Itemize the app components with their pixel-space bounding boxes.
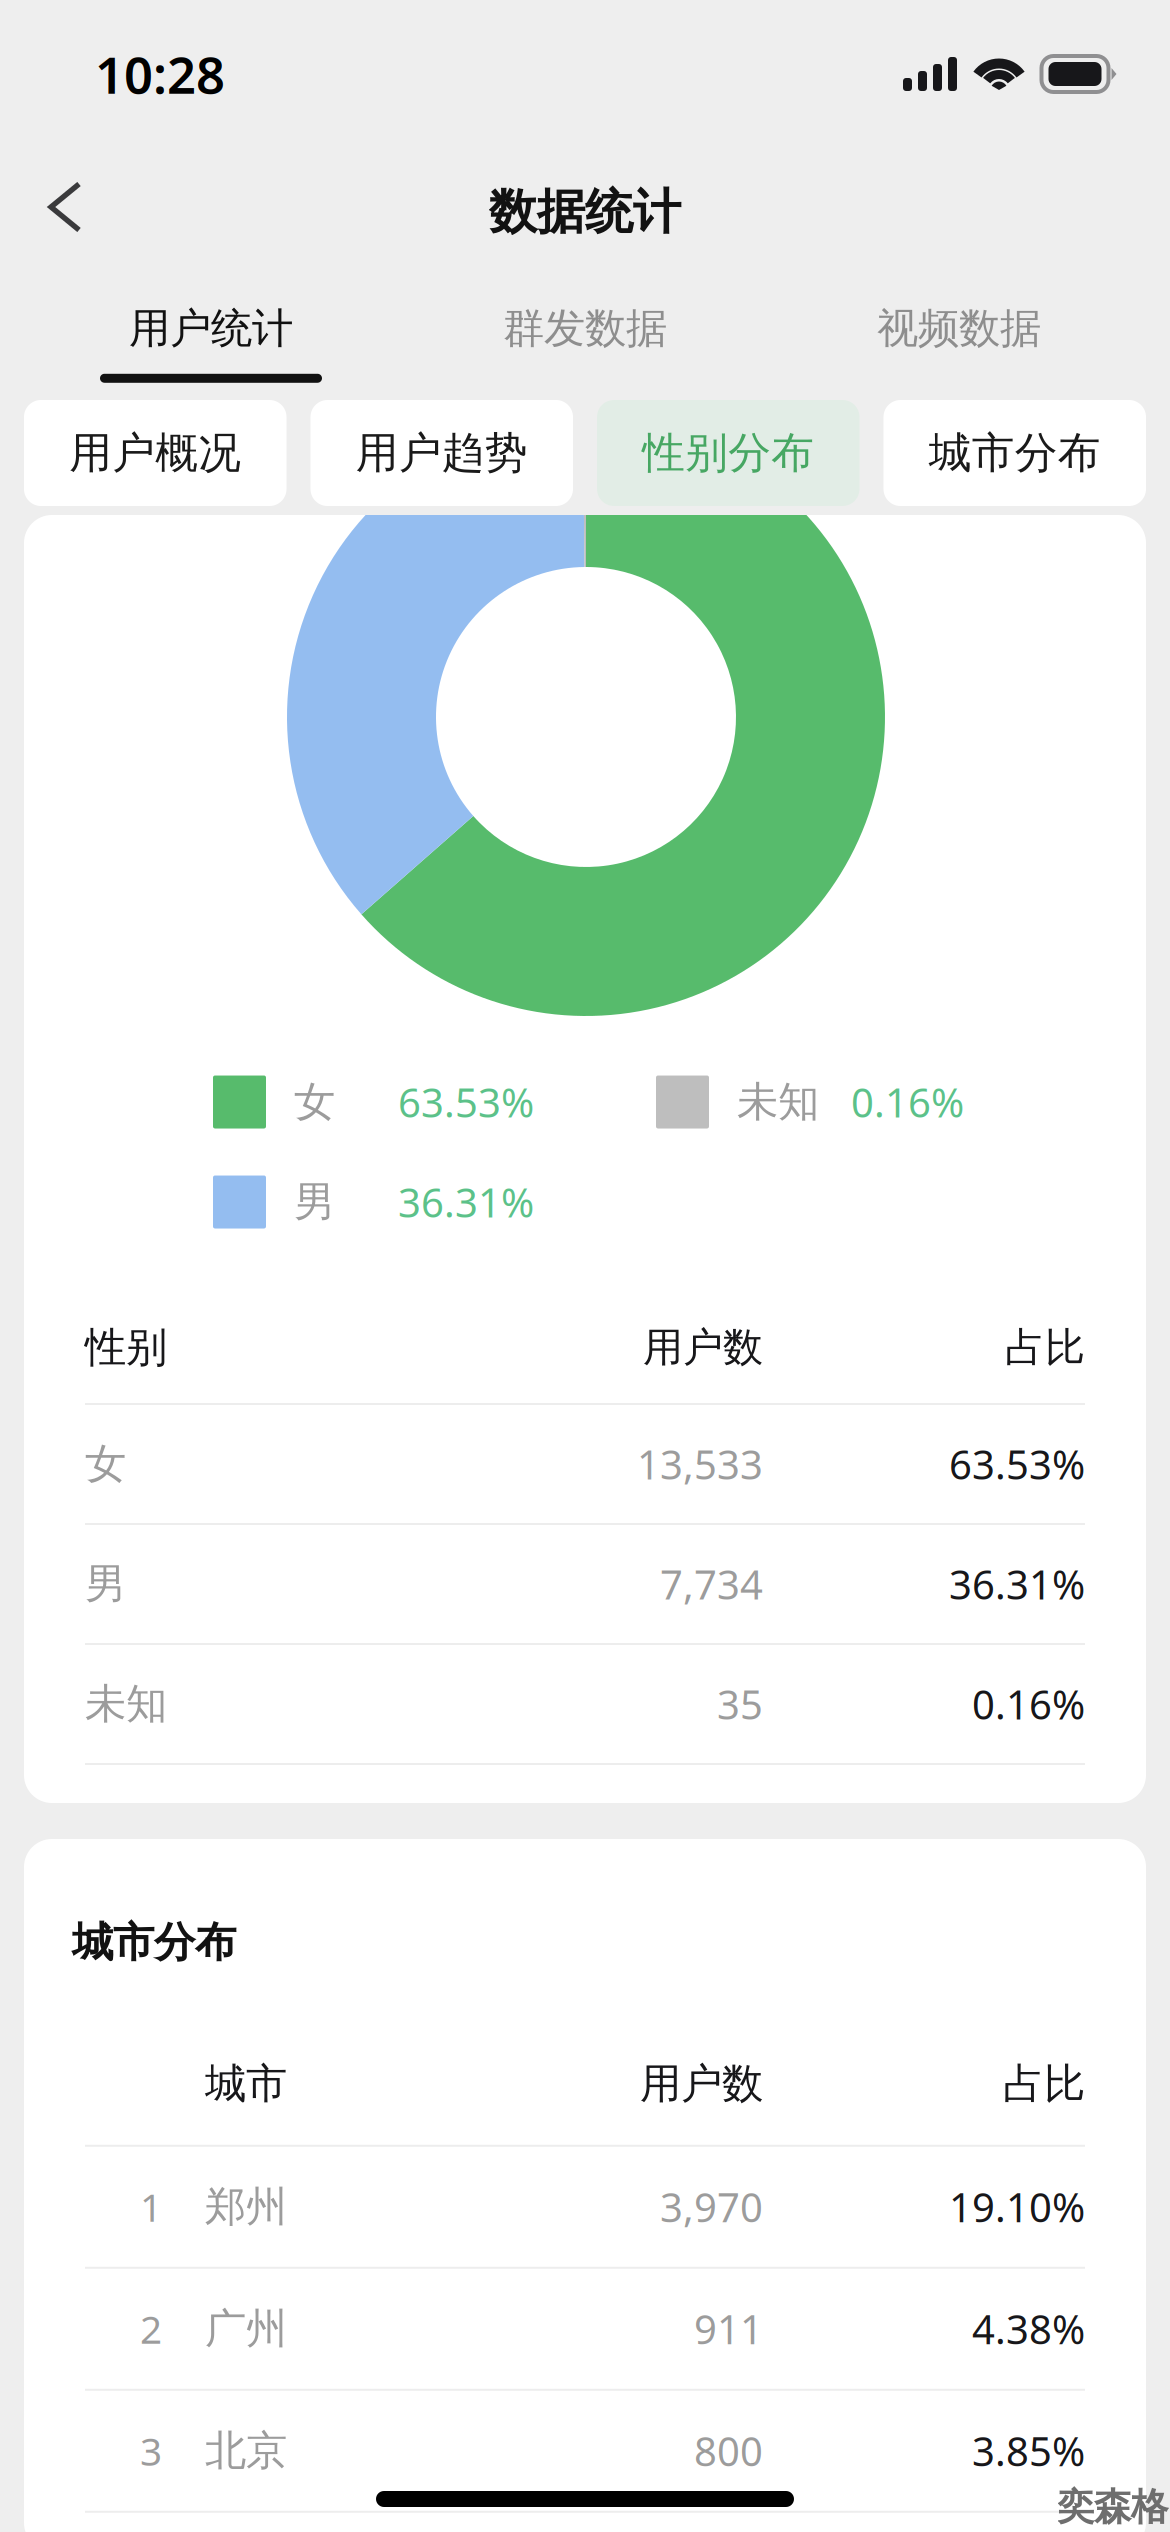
staticText: 0.16%: [851, 1075, 964, 1128]
staticText: 4.38%: [972, 2302, 1085, 2355]
button[interactable]: 城市分布: [883, 400, 1146, 506]
staticText: 0.16%: [972, 1677, 1085, 1730]
staticText: 性别分布: [642, 427, 814, 479]
staticText: 群发数据: [503, 303, 667, 354]
staticText: 用户统计: [129, 303, 293, 354]
staticText: 10:28: [95, 40, 225, 108]
button[interactable]: 用户趋势: [310, 400, 573, 506]
button[interactable]: 性别分布: [597, 400, 859, 506]
staticText: 占比: [1005, 1323, 1085, 1372]
staticText: 城市: [205, 2058, 287, 2109]
staticText: 800: [694, 2424, 763, 2477]
staticText: 3: [140, 2425, 162, 2476]
staticText: 35: [717, 1677, 763, 1730]
staticText: 36.31%: [398, 1175, 534, 1228]
staticText: 1: [140, 2181, 162, 2232]
staticText: 2: [140, 2303, 162, 2354]
button[interactable]: Back: [12, 162, 112, 262]
staticText: 3,970: [660, 2180, 763, 2233]
staticText: 女: [294, 1077, 335, 1127]
staticText: 占比: [1003, 2058, 1085, 2109]
button[interactable]: 视频数据: [772, 276, 1146, 400]
staticText: 性别: [85, 1322, 167, 1373]
staticText: 3.85%: [972, 2424, 1085, 2477]
staticText: 广州: [205, 2303, 287, 2354]
staticText: 城市分布: [72, 1917, 236, 1968]
staticText: 63.53%: [949, 1437, 1085, 1490]
staticText: 63.53%: [398, 1075, 534, 1128]
staticText: 城市分布: [929, 427, 1101, 479]
staticText: 用户数: [640, 2058, 763, 2109]
staticText: 用户趋势: [356, 427, 528, 479]
button[interactable]: 群发数据: [398, 276, 772, 400]
staticText: 用户数: [643, 1323, 763, 1372]
staticText: 7,734: [660, 1557, 763, 1610]
button[interactable]: 用户概况: [24, 400, 286, 506]
staticText: 数据统计: [489, 182, 681, 241]
staticText: 19.10%: [949, 2180, 1085, 2233]
staticText: 郑州: [205, 2181, 287, 2232]
staticText: 36.31%: [949, 1557, 1085, 1610]
staticText: 男: [85, 1559, 126, 1609]
staticText: 奕森格: [1057, 2484, 1168, 2530]
staticText: 视频数据: [877, 303, 1041, 354]
staticText: 未知: [737, 1077, 819, 1127]
staticText: 用户概况: [69, 427, 241, 479]
staticText: 未知: [85, 1679, 167, 1729]
staticText: 911: [694, 2302, 763, 2355]
button[interactable]: 用户统计: [24, 276, 398, 400]
staticText: 北京: [205, 2425, 287, 2476]
staticText: 13,533: [637, 1437, 763, 1490]
staticText: 男: [294, 1177, 335, 1227]
staticText: 女: [85, 1439, 126, 1489]
